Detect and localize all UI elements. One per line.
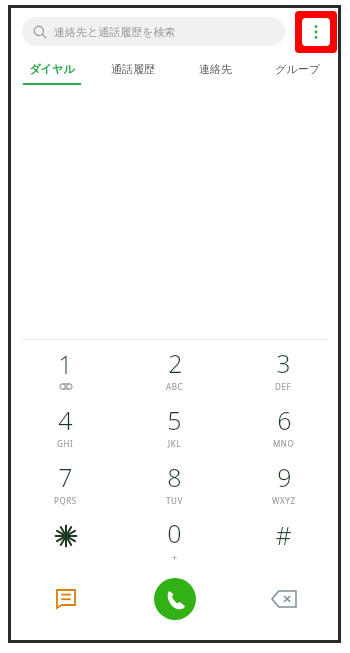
- button[interactable]: More options: [302, 18, 330, 46]
- staticText: ABC: [166, 381, 184, 392]
- staticText: WXYZ: [272, 495, 296, 506]
- staticText: 9: [277, 460, 292, 494]
- other: Call: [120, 568, 229, 630]
- button[interactable]: 連絡先と通話履歴を検索: [22, 17, 285, 46]
- button[interactable]: [11, 511, 120, 568]
- staticText: 5: [167, 403, 182, 437]
- button[interactable]: 7: [11, 454, 120, 511]
- staticText: グループ: [275, 62, 320, 76]
- staticText: MNO: [273, 438, 295, 449]
- staticText: GHI: [57, 438, 74, 449]
- button[interactable]: 8: [120, 454, 229, 511]
- staticText: JKL: [168, 438, 182, 449]
- button[interactable]: 0: [120, 511, 229, 568]
- button[interactable]: Backspace: [229, 568, 338, 630]
- button[interactable]: 3: [229, 340, 338, 397]
- staticText: 7: [58, 460, 73, 494]
- staticText: PQRS: [54, 495, 77, 506]
- button[interactable]: #: [229, 511, 338, 568]
- button[interactable]: 4: [11, 397, 120, 454]
- button[interactable]: 1: [11, 340, 120, 397]
- staticText: 3: [276, 346, 291, 380]
- button[interactable]: 9: [229, 454, 338, 511]
- staticText: 1: [58, 347, 73, 381]
- staticText: TUV: [166, 495, 183, 506]
- staticText: 4: [58, 403, 73, 437]
- button[interactable]: ダイヤル: [11, 55, 92, 92]
- button[interactable]: 連絡先: [174, 55, 256, 92]
- staticText: 連絡先と通話履歴を検索: [54, 25, 176, 39]
- button[interactable]: Send message: [11, 568, 120, 630]
- button[interactable]: 2: [120, 340, 229, 397]
- button[interactable]: 通話履歴: [92, 55, 174, 92]
- button[interactable]: 5: [120, 397, 229, 454]
- button[interactable]: 6: [229, 397, 338, 454]
- staticText: +: [172, 551, 178, 563]
- button[interactable]: グループ: [256, 55, 338, 92]
- staticText: 連絡先: [199, 62, 232, 76]
- staticText: 6: [277, 403, 292, 437]
- staticText: ダイヤル: [29, 62, 75, 76]
- staticText: 8: [167, 460, 182, 494]
- staticText: 2: [168, 346, 183, 380]
- staticText: DEF: [275, 381, 292, 392]
- button[interactable]: [154, 578, 196, 620]
- staticText: 通話履歴: [111, 62, 155, 76]
- staticText: 0: [167, 516, 182, 550]
- staticText: #: [275, 518, 292, 552]
